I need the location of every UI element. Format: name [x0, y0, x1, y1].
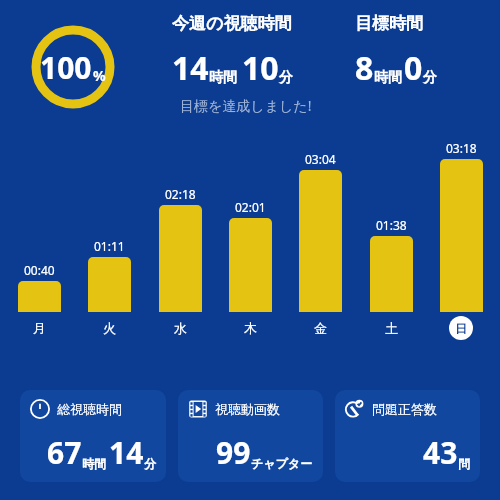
staticText: 01:11 — [94, 238, 125, 254]
staticText: 視聴動画数 — [215, 401, 280, 417]
staticText: 01:38 — [376, 217, 407, 233]
staticText: 問題正答数 — [372, 401, 437, 417]
staticText: 総視聴時間 — [57, 401, 122, 417]
button[interactable]: 03:04 — [295, 151, 345, 340]
staticText: チャプター — [251, 456, 313, 471]
staticText: 03:04 — [305, 151, 336, 167]
staticText: 99 — [216, 432, 251, 473]
other: 問題正答数 — [345, 399, 365, 419]
staticText: 03:18 — [446, 140, 477, 156]
staticText: 100 — [40, 47, 92, 88]
staticText: % — [93, 66, 106, 85]
staticText: 0 — [404, 46, 423, 90]
staticText: 木 — [244, 320, 257, 336]
staticText: 00:40 — [24, 262, 55, 278]
staticText: 67 — [47, 432, 82, 473]
staticText: 月 — [33, 320, 46, 336]
staticText: 8 — [355, 46, 374, 90]
button[interactable]: 02:01 — [225, 199, 275, 340]
staticText: 問 — [458, 456, 470, 471]
button[interactable]: 02:18 — [155, 186, 205, 340]
other: 総視聴時間 — [30, 399, 50, 419]
staticText: 目標時間 — [355, 13, 423, 34]
staticText: 分 — [423, 69, 437, 87]
staticText: 火 — [103, 320, 116, 336]
button[interactable]: 03:18 — [436, 140, 486, 340]
staticText: 日 — [455, 321, 467, 336]
staticText: 分 — [279, 69, 293, 87]
staticText: 今週の視聴時間 — [172, 13, 292, 34]
staticText: 10 — [242, 46, 279, 90]
button[interactable]: 達成率 100パーセント — [30, 24, 116, 110]
staticText: 02:01 — [235, 199, 266, 215]
button[interactable]: 総視聴時間 — [20, 390, 166, 482]
staticText: 金 — [314, 320, 327, 336]
staticText: 時間 — [209, 69, 237, 87]
staticText: 14 — [109, 432, 144, 473]
button[interactable]: 問題正答数 — [335, 390, 480, 482]
staticText: 水 — [174, 320, 187, 336]
staticText: 分 — [144, 456, 156, 471]
button[interactable]: 01:11 — [84, 238, 134, 340]
button[interactable]: 00:40 — [14, 262, 64, 340]
staticText: 14 — [172, 46, 209, 90]
staticText: 02:18 — [165, 186, 196, 202]
other: 視聴動画数 — [188, 399, 208, 419]
staticText: 土 — [385, 320, 398, 336]
staticText: 時間 — [374, 69, 402, 87]
staticText: 時間 — [82, 456, 106, 471]
staticText: 目標を達成しました! — [180, 96, 312, 115]
staticText: 43 — [423, 432, 458, 473]
button[interactable]: 01:38 — [366, 217, 416, 340]
button[interactable]: 視聴動画数 — [178, 390, 323, 482]
